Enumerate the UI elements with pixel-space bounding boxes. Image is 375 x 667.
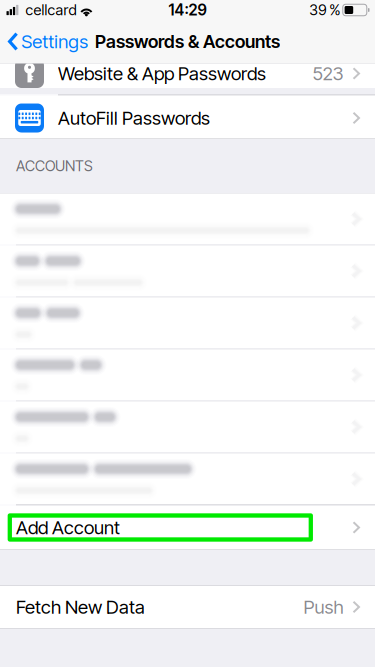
button[interactable] — [0, 297, 375, 348]
button[interactable]: Add Account — [0, 505, 375, 549]
button[interactable] — [0, 349, 375, 400]
staticText: Add Account — [16, 516, 120, 539]
staticText: ACCOUNTS — [16, 157, 93, 175]
staticText: Passwords & Accounts — [95, 31, 280, 52]
button[interactable]: Fetch New Data — [0, 586, 375, 628]
staticText: 39 % — [309, 1, 340, 19]
staticText: Website & App Passwords — [58, 62, 266, 85]
button[interactable] — [0, 401, 375, 452]
button[interactable]: AutoFill Passwords — [0, 95, 375, 138]
staticText: Settings — [21, 30, 88, 53]
button[interactable]: Website & App Passwords — [0, 63, 375, 94]
staticText: Push — [303, 596, 343, 618]
staticText: AutoFill Passwords — [58, 107, 210, 129]
button[interactable] — [0, 193, 375, 244]
staticText: 14:29 — [168, 1, 206, 19]
button[interactable]: Settings — [0, 20, 96, 63]
staticText: 523 — [312, 62, 343, 85]
staticText: cellcard — [25, 1, 76, 19]
button[interactable] — [0, 245, 375, 296]
staticText: Fetch New Data — [16, 596, 145, 618]
button[interactable] — [0, 453, 375, 504]
